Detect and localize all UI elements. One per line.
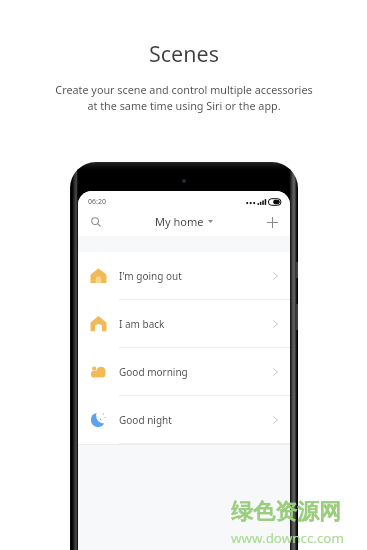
- staticText: Scenes: [149, 39, 219, 68]
- staticText: I am back: [119, 317, 165, 331]
- staticText: Create your scene and control multiple a…: [55, 82, 313, 113]
- staticText: Good night: [119, 413, 172, 427]
- staticText: 06:20: [88, 197, 106, 207]
- button[interactable]: Search: [84, 210, 108, 234]
- button[interactable]: I'm going out: [78, 252, 290, 300]
- button[interactable]: I am back: [78, 300, 290, 348]
- staticText: Good morning: [119, 365, 188, 379]
- staticText: www.downcc.com: [231, 529, 344, 547]
- staticText: My home: [155, 214, 204, 229]
- button[interactable]: Good morning: [78, 348, 290, 396]
- button[interactable]: My home: [155, 214, 213, 229]
- staticText: 绿色资源网: [231, 498, 341, 526]
- button[interactable]: Add: [260, 210, 284, 234]
- button[interactable]: Good night: [78, 396, 290, 444]
- staticText: I'm going out: [119, 269, 182, 283]
